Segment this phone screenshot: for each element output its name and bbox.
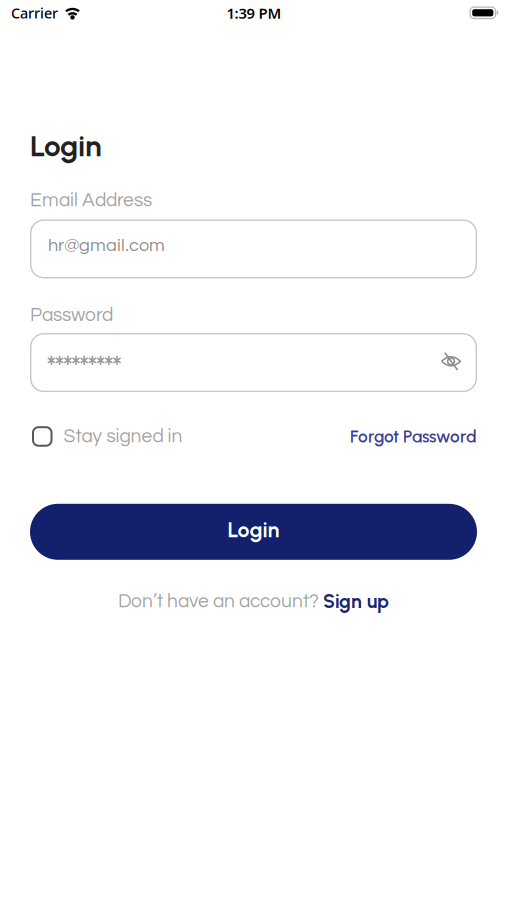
staticText: Stay signed in (63, 427, 182, 446)
button[interactable]: hr@gmail.com (0, 219, 507, 278)
staticText: Email Address (30, 191, 152, 210)
staticText: Carrier (11, 3, 58, 23)
button[interactable]: Sign up (323, 590, 389, 613)
staticText: Sign up (323, 590, 389, 613)
staticText: Login (227, 517, 279, 543)
button[interactable]: Stay signed in (32, 426, 182, 447)
staticText: hr@gmail.com (48, 236, 165, 255)
button[interactable]: Forgot Password (350, 426, 477, 447)
staticText: 1:39 PM (226, 3, 281, 23)
staticText: Forgot Password (350, 426, 477, 447)
staticText: Don’t have an account? (118, 591, 323, 611)
staticText: Login (30, 128, 102, 164)
button[interactable]: Login (0, 504, 507, 560)
button[interactable] (0, 333, 507, 392)
button[interactable]: Show password (437, 349, 465, 377)
staticText: Password (30, 305, 113, 325)
